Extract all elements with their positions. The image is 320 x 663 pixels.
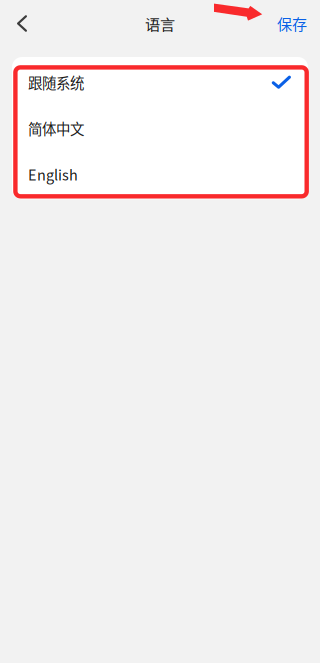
button[interactable]: Back bbox=[0, 0, 41, 47]
button[interactable]: 保存 bbox=[263, 0, 320, 47]
button[interactable]: English bbox=[12, 151, 308, 197]
button[interactable]: 简体中文 bbox=[12, 105, 308, 151]
staticText: 语言 bbox=[145, 12, 175, 34]
button[interactable]: 跟随系统 bbox=[12, 59, 308, 105]
staticText: English bbox=[28, 164, 78, 185]
staticText: 保存 bbox=[277, 13, 307, 34]
staticText: 跟随系统 bbox=[28, 72, 84, 93]
staticText: 简体中文 bbox=[28, 118, 84, 139]
